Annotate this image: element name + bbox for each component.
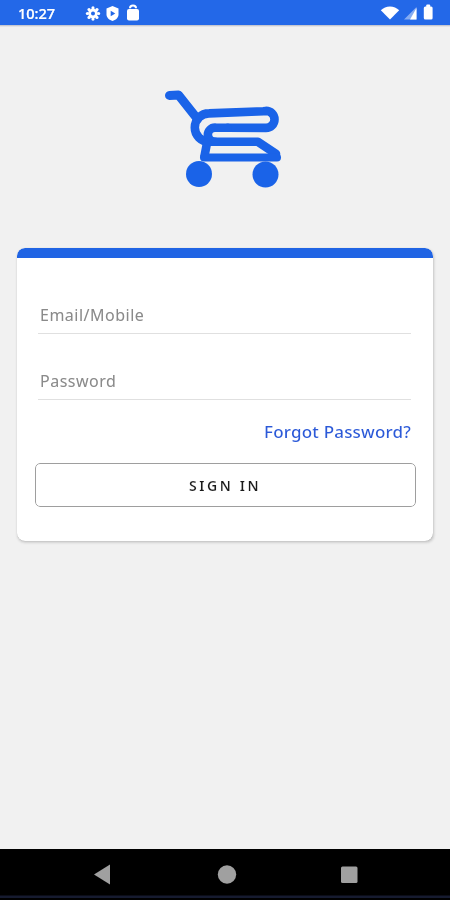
staticText: Email/Mobile <box>40 304 145 326</box>
button[interactable]: Password <box>40 370 411 402</box>
button[interactable] <box>150 849 300 900</box>
button[interactable]: Forgot Password? <box>257 418 412 444</box>
staticText: Password <box>40 370 117 392</box>
button[interactable]: SIGN IN <box>35 463 416 507</box>
button[interactable] <box>0 849 150 900</box>
staticText: SIGN IN <box>189 476 262 495</box>
staticText: 10:27 <box>18 3 56 23</box>
button[interactable]: Email/Mobile <box>40 304 411 336</box>
button[interactable] <box>300 849 450 900</box>
staticText: Forgot Password? <box>264 420 412 443</box>
